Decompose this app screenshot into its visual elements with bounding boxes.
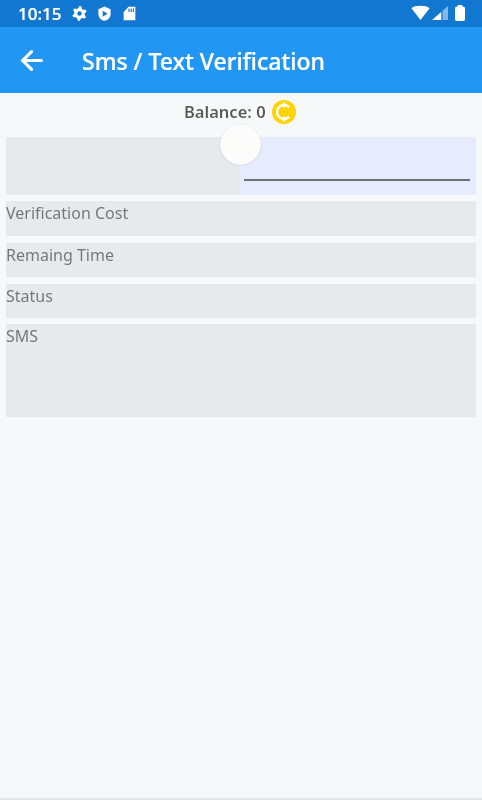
staticText: Remaing Time bbox=[6, 244, 114, 266]
staticText: Verification Cost bbox=[6, 202, 129, 224]
button[interactable]: SMS bbox=[6, 324, 476, 417]
button[interactable]: Country code bbox=[6, 137, 240, 195]
button[interactable]: Verification Cost bbox=[6, 201, 476, 236]
button[interactable]: Phone number field bbox=[240, 137, 476, 195]
button[interactable]: Country flag bbox=[219, 123, 262, 166]
staticText: SMS bbox=[6, 325, 39, 347]
button[interactable]: Back bbox=[9, 38, 53, 82]
button[interactable]: Remaing Time bbox=[6, 243, 476, 277]
staticText: Sms / Text Verification bbox=[82, 45, 325, 76]
button[interactable]: Status bbox=[6, 284, 476, 318]
staticText: Status bbox=[6, 285, 53, 307]
staticText: Balance: 0 bbox=[184, 100, 266, 122]
staticText: 10:15 bbox=[18, 2, 62, 25]
